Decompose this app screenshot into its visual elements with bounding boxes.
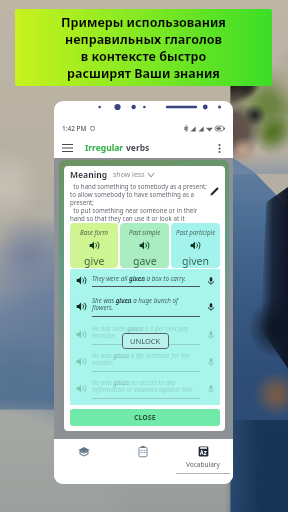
button[interactable]: Practice	[113, 439, 173, 484]
staticText: Vocabulary	[186, 460, 220, 469]
button[interactable]: Learn	[54, 439, 113, 484]
button[interactable]: Menu	[62, 141, 78, 155]
staticText: Meaning	[70, 169, 108, 181]
staticText: verbs	[126, 142, 150, 154]
button[interactable]: Past simple	[120, 223, 169, 268]
button[interactable]: UNLOCK	[122, 333, 169, 349]
button[interactable]: Edit	[208, 185, 221, 198]
staticText: to hand something to somebody as a prese…	[70, 182, 208, 222]
button[interactable]: He was given a life sentence for the mur…	[74, 348, 216, 375]
button[interactable]: Vocabulary	[173, 439, 233, 484]
button[interactable]: show less	[113, 170, 154, 180]
staticText: He has been given a 3 per cent pay incre…	[92, 324, 200, 340]
staticText: He was given a life sentence for the mur…	[92, 351, 200, 367]
staticText: Irregular	[85, 142, 126, 154]
button[interactable]: He was given no access to any informatio…	[74, 375, 216, 402]
button[interactable]: Irregular	[85, 142, 150, 154]
button[interactable]: Past participle	[171, 223, 220, 268]
staticText: CLOSE	[134, 413, 156, 423]
staticText: She was given a huge bunch of flowers.	[92, 296, 200, 312]
staticText: give	[84, 254, 105, 268]
staticText: Past participle	[176, 228, 216, 236]
button[interactable]: She was given a huge bunch of flowers.	[74, 292, 216, 321]
staticText: 1:42 PM	[62, 124, 87, 133]
staticText: show less	[113, 170, 145, 180]
staticText: Past simple	[129, 228, 161, 236]
staticText: Base form	[80, 228, 108, 236]
staticText: UNLOCK	[130, 336, 161, 346]
staticText: gave	[133, 254, 157, 268]
button[interactable]: More options	[213, 141, 225, 155]
staticText: They were all given a box to carry.	[92, 274, 186, 282]
staticText: given	[182, 254, 209, 268]
button[interactable]: He has been given a 3 per cent pay incre…	[74, 321, 216, 348]
button[interactable]: Base form	[70, 223, 118, 268]
staticText: Примеры использования неправильных глаго…	[61, 14, 226, 82]
button[interactable]: They were all given a box to carry.	[74, 269, 216, 292]
staticText: He was given no access to any informatio…	[92, 378, 200, 394]
button[interactable]: CLOSE	[70, 409, 220, 426]
